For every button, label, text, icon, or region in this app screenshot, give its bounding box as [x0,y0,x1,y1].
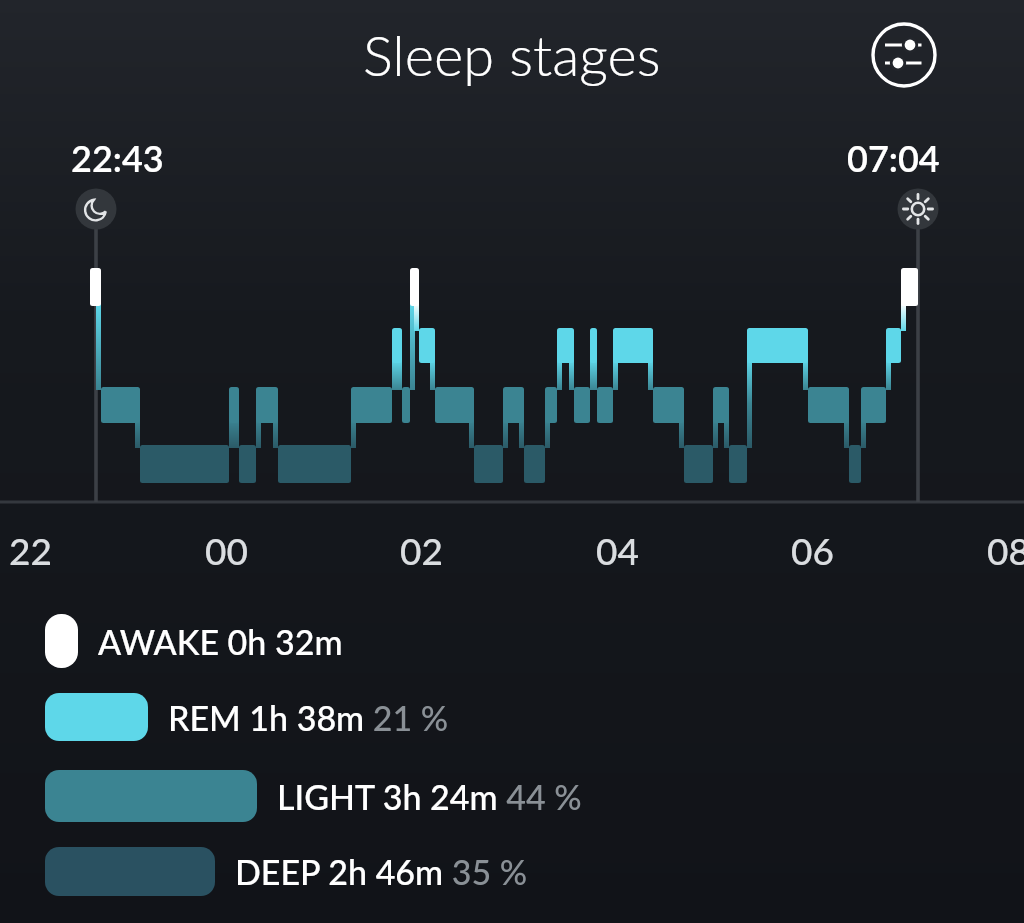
button[interactable] [867,18,939,90]
staticText: 22:43 [71,136,164,179]
button[interactable]: LIGHT 3h 24m 44 % [45,770,582,822]
staticText: 22 [9,528,52,572]
staticText: Sleep stages [363,21,661,88]
staticText: DEEP 2h 46m 35 % [235,851,528,892]
button[interactable]: DEEP 2h 46m 35 % [45,847,528,896]
button[interactable]: AWAKE 0h 32m [45,614,343,668]
staticText: 08 [987,528,1024,572]
staticText: 00 [205,528,248,572]
staticText: AWAKE 0h 32m [98,621,343,662]
staticText: 07:04 [847,136,940,179]
staticText: LIGHT 3h 24m 44 % [277,776,582,817]
staticText: 06 [791,528,834,572]
staticText: REM 1h 38m 21 % [168,697,449,738]
button[interactable]: REM 1h 38m 21 % [45,693,449,741]
staticText: 02 [400,528,443,572]
staticText: 04 [596,528,639,572]
